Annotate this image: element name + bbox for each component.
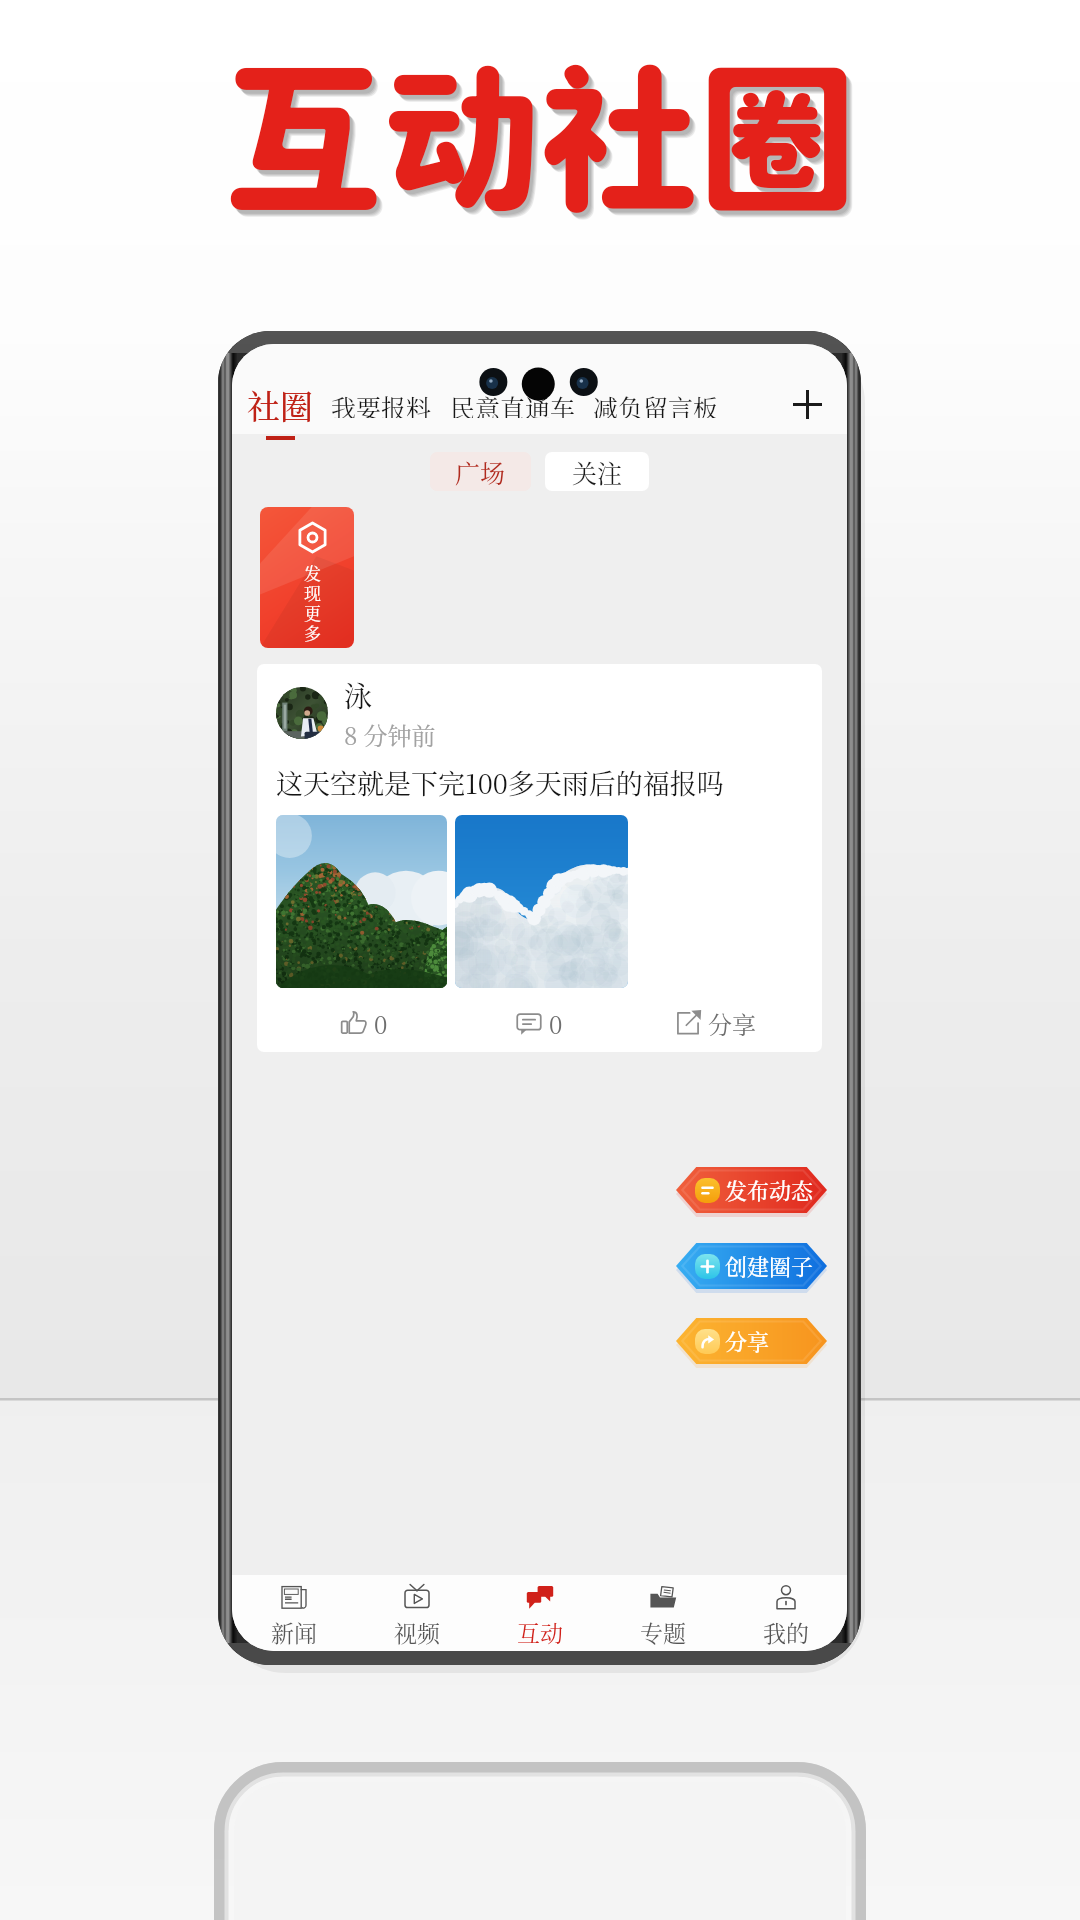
staticText: 8 分钟前 xyxy=(344,717,436,751)
button[interactable]: 新闻 xyxy=(232,1575,355,1651)
button[interactable]: 我要报料 xyxy=(329,381,434,426)
staticText: 这天空就是下完100多天雨后的福报吗 xyxy=(276,763,724,802)
staticText: 视频 xyxy=(394,1616,440,1649)
button[interactable]: 泳 xyxy=(257,664,822,1052)
staticText: 减负留言板 xyxy=(593,389,719,418)
staticText: 互动社圈 xyxy=(230,52,862,238)
button[interactable]: 视频 xyxy=(355,1575,478,1651)
staticText: 泳 xyxy=(344,675,373,715)
staticText: 0 xyxy=(549,1006,563,1040)
staticText: 0 xyxy=(374,1006,388,1040)
button[interactable]: 发 现 更 多 xyxy=(260,507,354,648)
staticText: 互动 xyxy=(517,1616,563,1649)
button[interactable]: 分享 xyxy=(670,1002,760,1044)
button[interactable]: 分享 xyxy=(676,1318,827,1364)
staticText: 互动社圈 xyxy=(227,49,859,235)
staticText: 新闻 xyxy=(271,1616,317,1649)
staticText: 分享 xyxy=(708,1006,756,1040)
staticText: 专题 xyxy=(640,1616,686,1649)
button[interactable]: 0 xyxy=(511,1002,567,1044)
staticText: 分享 xyxy=(725,1325,770,1357)
button[interactable]: 互动 xyxy=(478,1575,601,1651)
staticText: 创建圈子 xyxy=(725,1250,814,1282)
button[interactable]: 专题 xyxy=(601,1575,724,1651)
staticText: 我的 xyxy=(763,1616,809,1649)
button[interactable]: 0 xyxy=(336,1002,392,1044)
staticText: 社圈 xyxy=(247,381,313,426)
button[interactable]: 发布动态 xyxy=(676,1167,827,1213)
staticText: 关注 xyxy=(572,454,623,490)
staticText: 互动社圈 xyxy=(228,50,860,236)
staticText: 民意直通车 xyxy=(450,389,576,418)
button[interactable]: 我的 xyxy=(724,1575,847,1651)
staticText: 互动社圈 xyxy=(224,45,856,231)
button[interactable]: 民意直通车 xyxy=(448,381,578,426)
button[interactable]: 关注 xyxy=(545,452,649,491)
staticText: 发 现 更 多 xyxy=(304,560,321,645)
staticText: 发布动态 xyxy=(725,1174,814,1206)
button[interactable]: 减负留言板 xyxy=(591,381,721,426)
button[interactable]: 社圈 xyxy=(243,381,317,426)
button[interactable]: 创建圈子 xyxy=(676,1243,827,1289)
staticText: 互动社圈 xyxy=(229,51,861,237)
button[interactable]: Add post xyxy=(785,382,829,426)
staticText: 我要报料 xyxy=(331,389,432,418)
button[interactable]: 广场 xyxy=(430,452,531,491)
staticText: 广场 xyxy=(455,454,506,490)
